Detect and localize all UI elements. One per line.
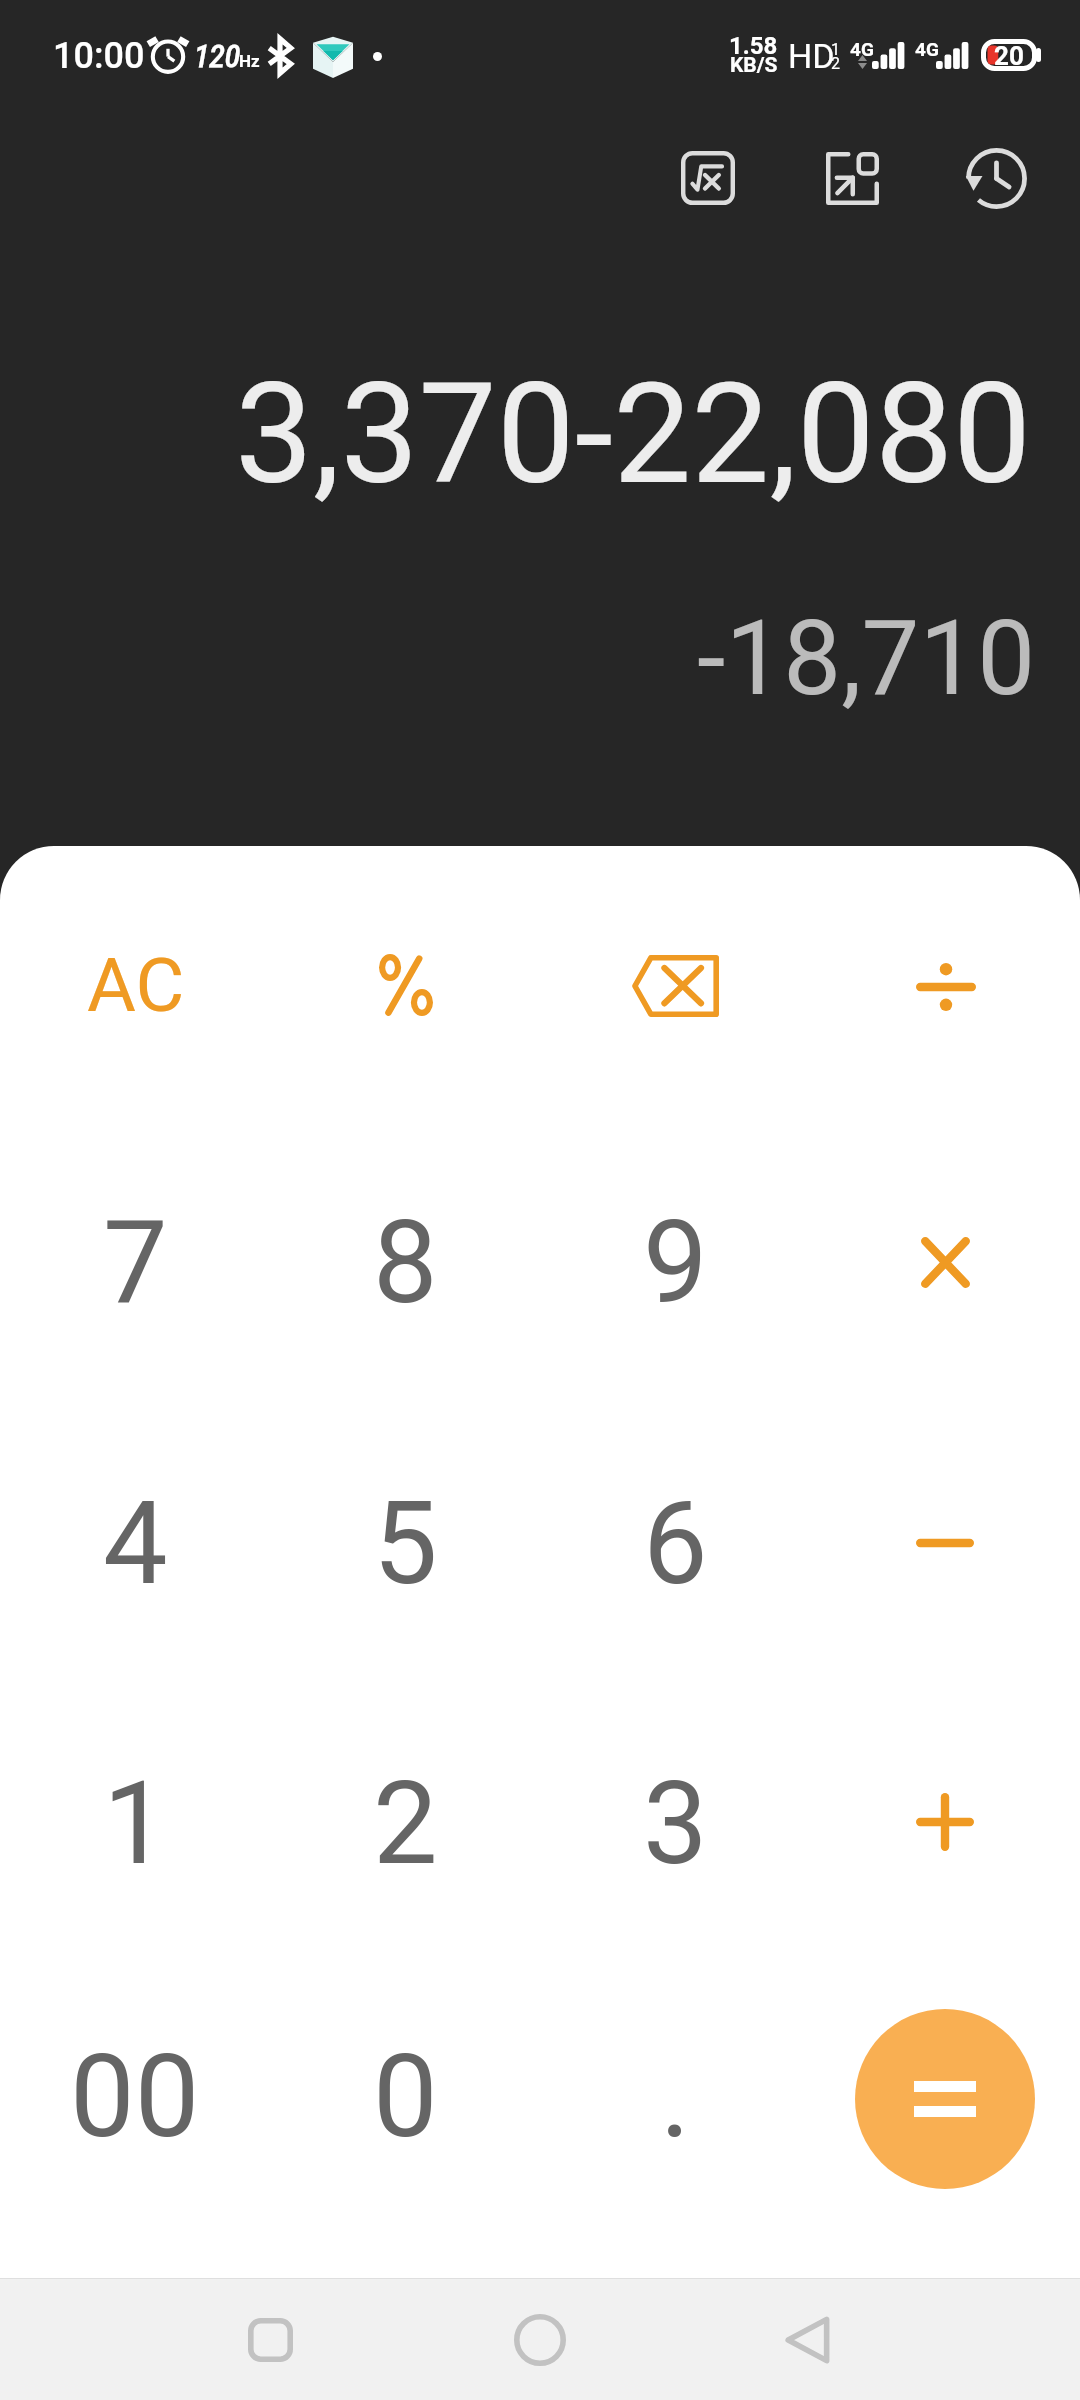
button[interactable]: 1 [0,1698,270,1948]
button[interactable]: History [942,124,1050,232]
staticText: 2 [373,1756,438,1891]
staticText: 4 [103,1476,168,1611]
button[interactable]: Equals [855,2009,1035,2189]
button[interactable]: Plus [810,1697,1080,1947]
button[interactable]: 8 [270,1137,540,1387]
staticText: 1.58 [729,32,778,60]
button[interactable]: 5 [270,1418,540,1668]
button[interactable]: AC [1,860,271,1110]
staticText: 3 [643,1756,708,1891]
staticText: Hz [239,51,260,71]
button[interactable]: 4 [0,1418,270,1668]
button[interactable]: 3 [540,1698,810,1948]
button[interactable]: Back [747,2280,867,2400]
staticText: . [660,2029,691,2164]
button[interactable]: 7 [0,1137,270,1387]
staticText: 0 [373,2029,438,2164]
staticText: 4G [850,38,874,60]
staticText: 9 [643,1195,708,1330]
button[interactable]: Divide [811,862,1080,1112]
button[interactable]: 2 [270,1698,540,1948]
staticText: 00 [70,2029,200,2164]
button[interactable]: 0 [270,1971,540,2221]
staticText: -18,710 [697,598,1036,719]
staticText: 3,370-22,080 [235,353,1032,516]
button[interactable]: Home [480,2280,600,2400]
button[interactable]: . [540,1971,810,2221]
button[interactable]: Minus [810,1418,1080,1668]
staticText: AC [87,941,185,1029]
staticText: 8 [373,1195,438,1330]
staticText: 2 [831,54,840,73]
staticText: 1 [831,40,840,59]
staticText: KB/S [730,53,778,78]
staticText: 4G [915,38,939,60]
button[interactable]: Scientific calculator [654,124,762,232]
staticText: 7 [103,1195,168,1330]
button[interactable]: 00 [0,1971,270,2221]
staticText: 120 [194,37,240,75]
button[interactable]: Floating window [798,124,906,232]
staticText: HD [788,36,835,76]
button[interactable]: 9 [540,1137,810,1387]
button[interactable]: Percent [271,860,541,1110]
staticText: 5 [373,1476,438,1611]
button[interactable]: 6 [540,1418,810,1668]
staticText: 10:00 [53,35,145,77]
button[interactable]: Delete [540,861,810,1111]
staticText: 1 [103,1756,168,1891]
button[interactable]: Recents [210,2280,330,2400]
staticText: 20 [994,41,1024,71]
button[interactable]: Multiply [810,1137,1080,1387]
staticText: 6 [643,1476,708,1611]
